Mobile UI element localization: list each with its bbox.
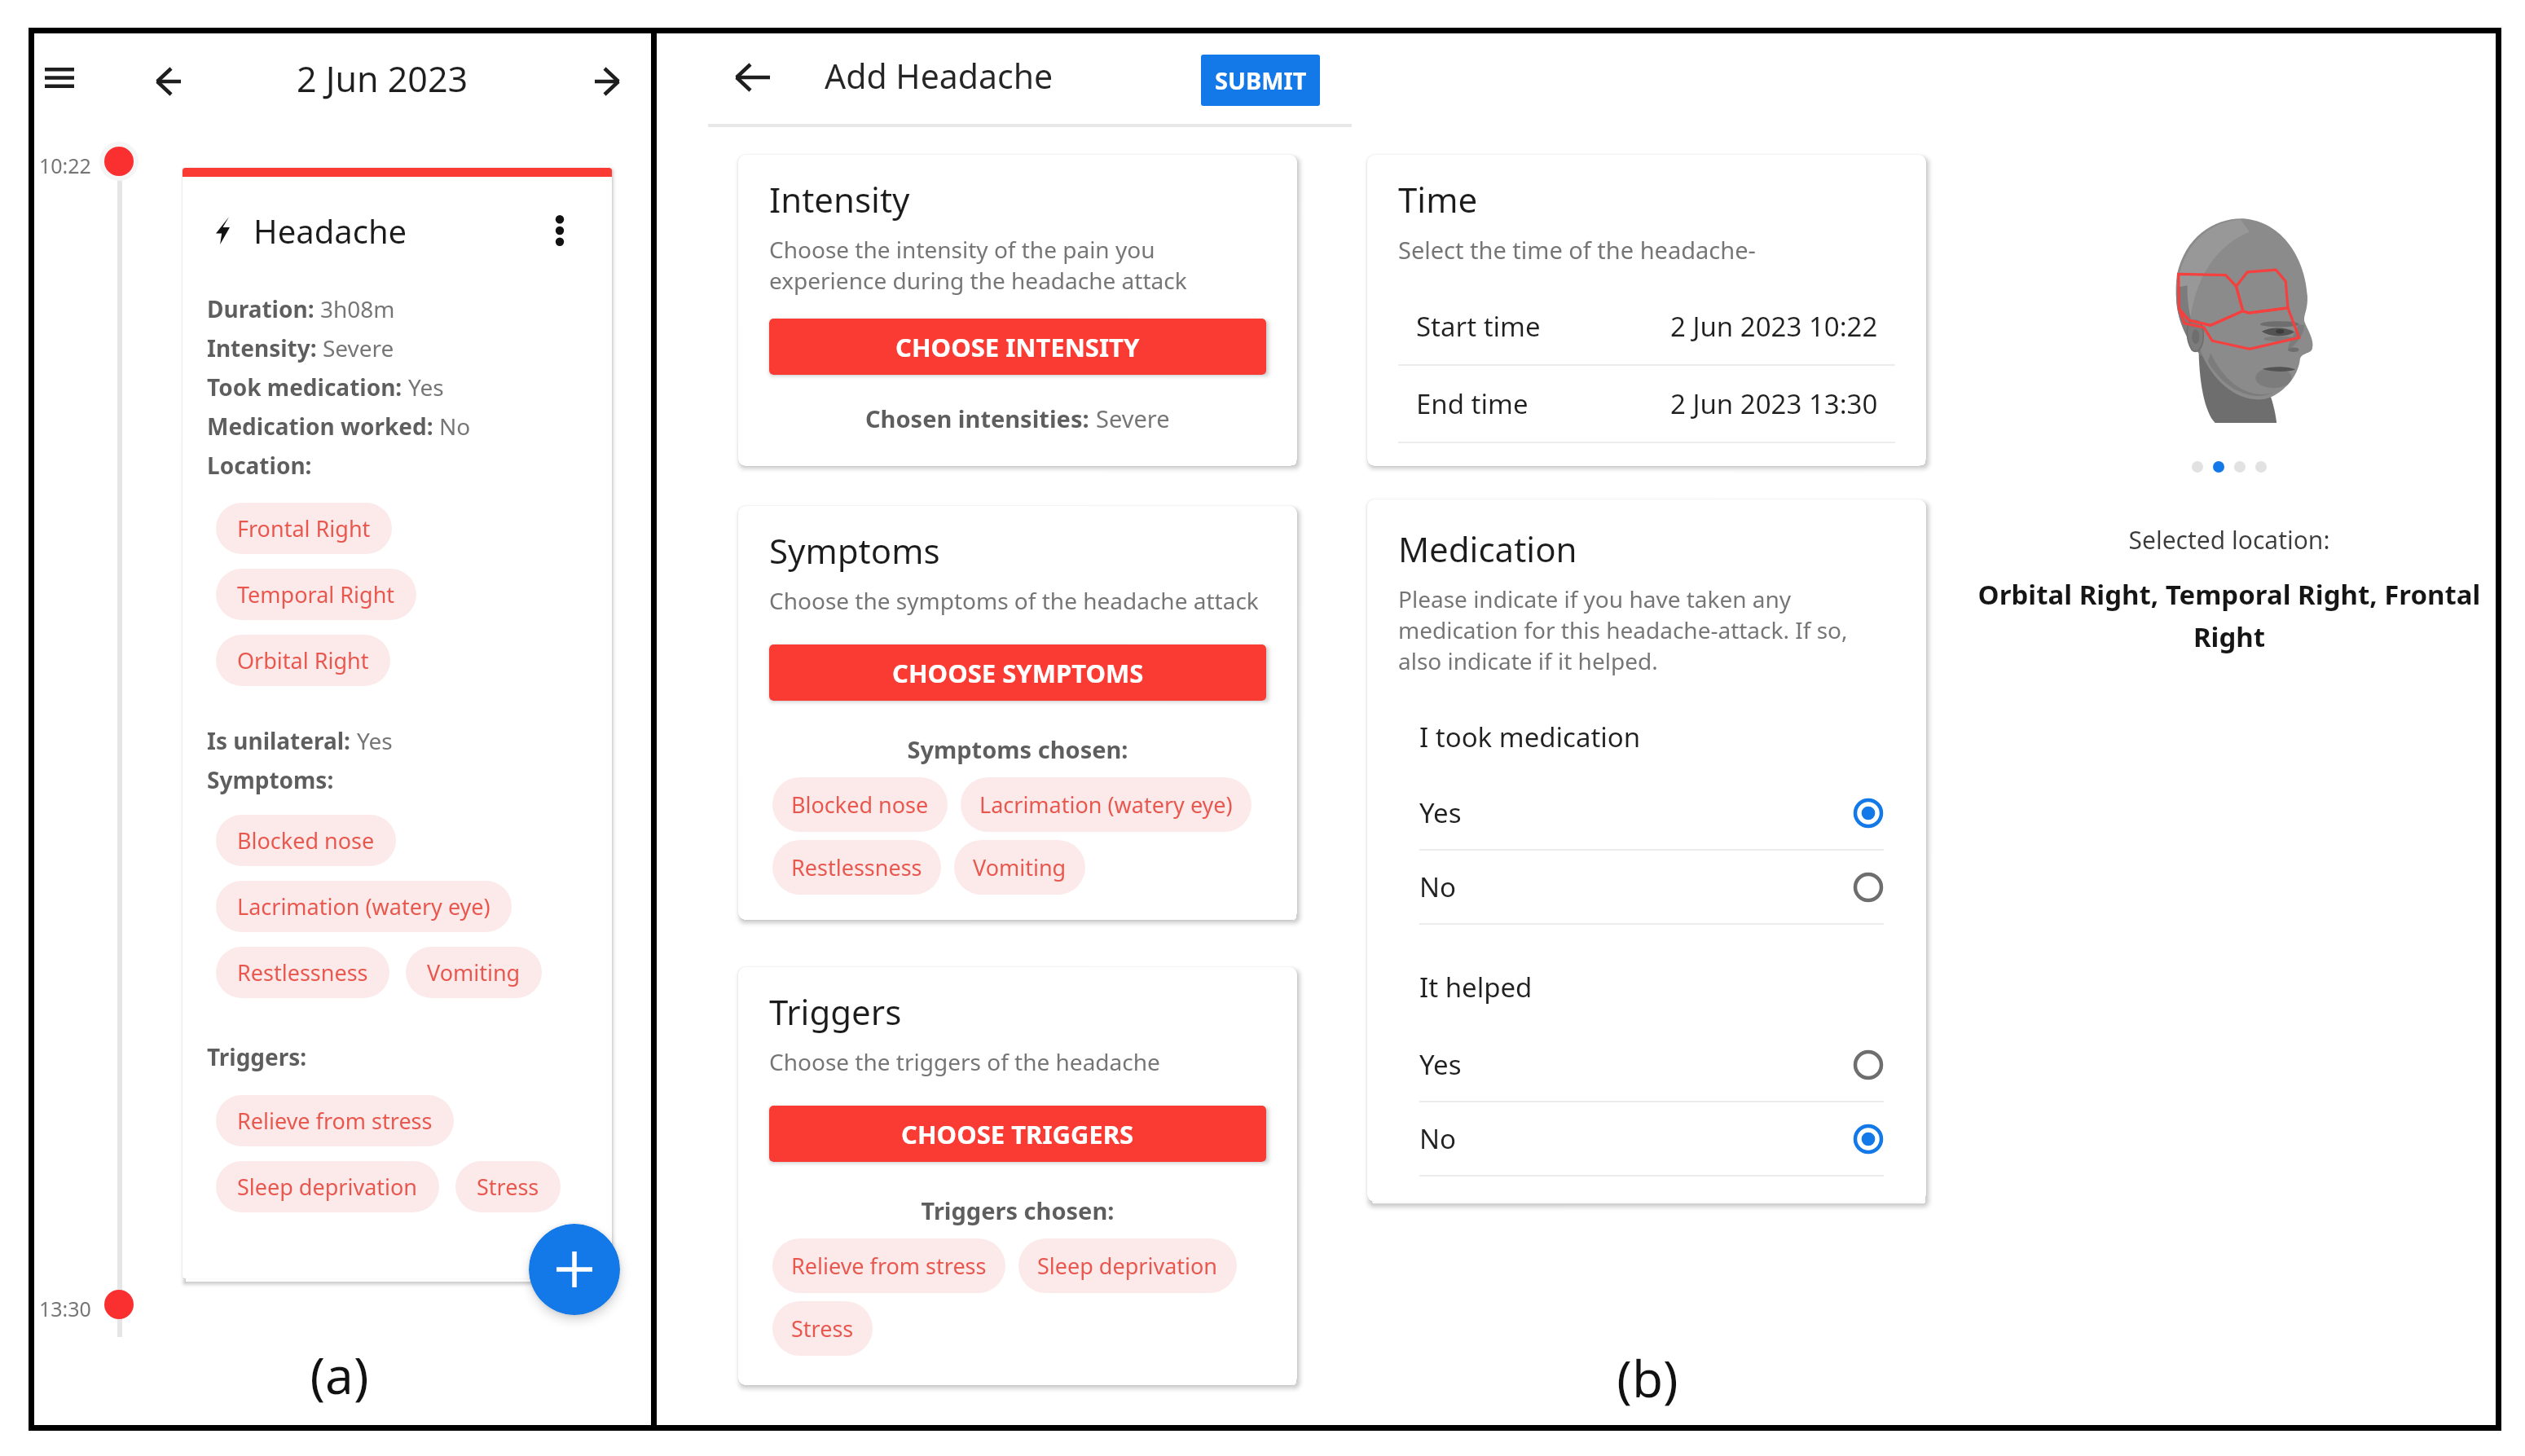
staticText: Relieve from stress [791,1251,987,1281]
staticText: Add Headache [825,53,1054,99]
staticText: Temporal Right [237,579,395,609]
staticText: I took medication [1419,719,1641,755]
staticText: Orbital Right, Temporal Right, Frontal R… [1944,576,2514,654]
staticText: Lacrimation (watery eye) [237,891,490,922]
staticText: Stress [477,1172,539,1202]
staticText: Took medication: [207,372,408,402]
button[interactable]: More options [541,212,578,249]
staticText: Lacrimation (watery eye) [979,790,1233,820]
button[interactable]: Sleep deprivation [216,1161,439,1212]
button[interactable]: Vomiting [406,947,542,998]
button[interactable]: CHOOSE INTENSITY [769,319,1266,375]
staticText: Choose the symptoms of the headache atta… [769,585,1259,616]
staticText: Sleep deprivation [1037,1251,1218,1281]
button[interactable]: View 3 [2234,461,2246,473]
staticText: 10:22 [39,152,91,179]
button[interactable]: Add headache [529,1224,620,1315]
staticText: No [1419,1120,1457,1157]
button[interactable]: Lacrimation (watery eye) [216,881,512,932]
button[interactable]: No [1419,851,1884,923]
button[interactable]: Orbital Right [216,635,390,686]
staticText: Yes [357,725,393,756]
staticText: Yes [1419,1046,1462,1083]
button[interactable]: Temporal Right [216,569,416,620]
staticText: Intensity [769,176,910,222]
staticText: Vomiting [427,957,521,988]
button[interactable]: Lacrimation (watery eye) [961,777,1252,832]
staticText: Choose the triggers of the headache [769,1046,1160,1077]
staticText: Start time [1416,308,1541,345]
button[interactable]: Next day [588,63,626,100]
staticText: Sleep deprivation [237,1172,418,1202]
staticText: Triggers chosen: [769,1194,1266,1226]
staticText: Symptoms [769,527,940,574]
button[interactable]: SUBMIT [1201,55,1320,106]
staticText: Frontal Right [237,513,371,543]
button[interactable]: Restlessness [216,947,389,998]
staticText: No [439,411,471,442]
button[interactable]: Stress [455,1161,561,1212]
staticText: Duration: [207,293,320,324]
staticText: Triggers [769,988,902,1035]
button[interactable]: CHOOSE SYMPTOMS [769,644,1266,701]
staticText: Relieve from stress [237,1106,433,1136]
staticText: (b) [1444,1344,1851,1412]
button[interactable]: Menu [34,52,85,103]
button[interactable]: Back [730,55,776,100]
staticText: Orbital Right [237,645,369,675]
staticText: Severe [323,332,394,363]
staticText: Medication worked: [207,411,439,442]
button[interactable]: Stress [772,1301,873,1356]
staticText: CHOOSE SYMPTOMS [892,656,1144,690]
staticText: 2 Jun 2023 [219,55,545,103]
staticText: SUBMIT [1215,64,1307,96]
staticText: Selected location: [1944,523,2514,556]
staticText: Select the time of the headache- [1398,234,1756,266]
staticText: Time [1398,176,1478,222]
staticText: Yes [1419,794,1462,831]
staticText: Is unilateral: [207,725,357,756]
staticText: Medication [1398,526,1577,572]
button[interactable]: Previous day [150,63,187,100]
staticText: Choose the intensity of the pain you exp… [769,234,1266,296]
button[interactable]: CHOOSE TRIGGERS [769,1106,1266,1162]
button[interactable]: Relieve from stress [772,1238,1005,1293]
button[interactable]: View 4 [2255,461,2267,473]
staticText: Stress [791,1313,854,1344]
button[interactable]: Vomiting [954,840,1085,895]
staticText: Please indicate if you have taken any me… [1398,583,1895,676]
button[interactable]: End time [1398,366,1895,442]
staticText: CHOOSE INTENSITY [895,330,1140,364]
staticText: 2 Jun 2023 13:30 [1670,385,1878,422]
staticText: Yes [408,372,444,402]
button[interactable]: Yes [1419,776,1884,849]
staticText: 13:30 [39,1295,91,1322]
staticText: 2 Jun 2023 10:22 [1670,308,1878,345]
staticText: Blocked nose [791,790,929,820]
staticText: No [1419,869,1457,905]
staticText: 3h08m [320,293,395,324]
button[interactable]: Relieve from stress [216,1095,454,1146]
staticText: Headache [253,209,407,253]
staticText: It helped [1419,969,1533,1005]
button[interactable]: Blocked nose [216,815,396,866]
button[interactable]: View 1 [2192,461,2203,473]
staticText: Restlessness [237,957,368,988]
button[interactable]: View 2 [2213,461,2224,473]
button[interactable]: Yes [1419,1028,1884,1101]
staticText: Restlessness [791,852,922,882]
staticText: Severe [1096,402,1170,434]
staticText: Blocked nose [237,825,375,856]
button[interactable]: Restlessness [772,840,941,895]
button[interactable]: Frontal Right [216,503,392,554]
button[interactable]: Start time [1398,288,1895,364]
staticText: (a) [31,1340,648,1409]
button[interactable]: No [1419,1102,1884,1175]
button[interactable]: Sleep deprivation [1018,1238,1237,1293]
button[interactable]: Blocked nose [772,777,948,832]
staticText: Symptoms: [207,764,340,795]
staticText: Triggers: [207,1041,313,1072]
staticText: Vomiting [973,852,1067,882]
staticText: Symptoms chosen: [769,733,1266,765]
staticText: Intensity: [207,332,323,363]
